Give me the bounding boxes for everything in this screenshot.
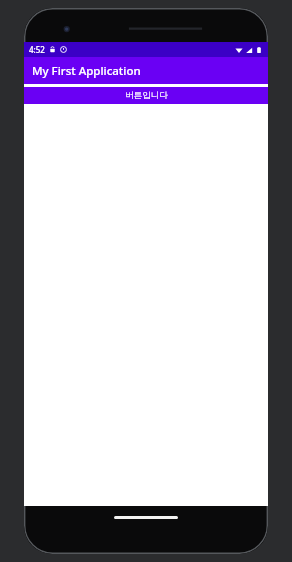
button[interactable]: 버튼입니다 xyxy=(24,87,268,104)
staticText: 4:52 xyxy=(29,44,45,55)
staticText: My First Application xyxy=(32,63,141,79)
staticText: 버튼입니다 xyxy=(125,90,168,101)
